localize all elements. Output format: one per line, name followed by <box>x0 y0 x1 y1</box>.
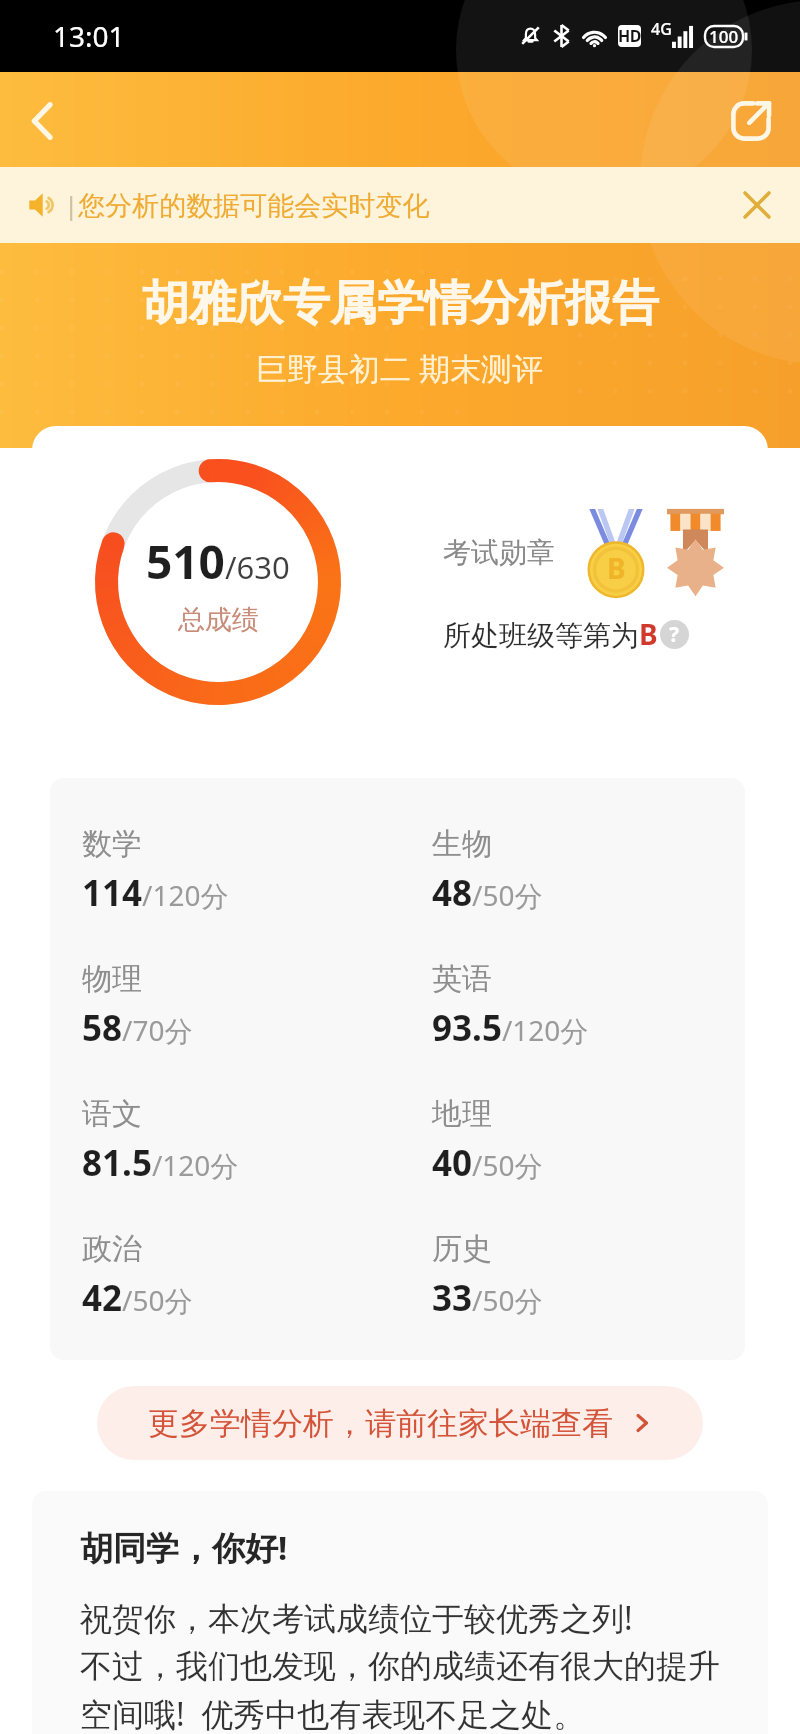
staticText: 数学 <box>82 825 142 863</box>
staticText: 510/630 <box>146 530 290 593</box>
staticText: 58/70分 <box>82 1004 193 1052</box>
staticText: 胡同学，你好! <box>80 1525 288 1570</box>
staticText: 物理 <box>82 960 142 998</box>
staticText: HD <box>618 25 641 47</box>
staticText: 历史 <box>432 1230 492 1268</box>
staticText: 生物 <box>432 825 492 863</box>
staticText: 所处班级等第为B <box>443 615 658 653</box>
button[interactable]: Back <box>16 95 68 147</box>
staticText: 总成绩 <box>178 603 259 637</box>
staticText: 巨野县初二 期末测评 <box>256 347 544 389</box>
staticText: 更多学情分析，请前往家长端查看 <box>148 1404 613 1443</box>
staticText: |您分析的数据可能会实时变化 <box>64 187 430 223</box>
staticText: 40/50分 <box>432 1139 543 1187</box>
staticText: 语文 <box>82 1095 142 1133</box>
button[interactable]: Share <box>724 94 778 148</box>
button[interactable]: Close <box>732 180 782 230</box>
staticText: 42/50分 <box>82 1274 193 1322</box>
staticText: 祝贺你，本次考试成绩位于较优秀之列! 不过，我们也发现，你的成绩还有很大的提升空… <box>80 1596 744 1734</box>
staticText: 地理 <box>432 1095 492 1133</box>
staticText: 48/50分 <box>432 869 543 917</box>
button[interactable]: Help <box>660 620 689 649</box>
staticText: 93.5/120分 <box>432 1004 589 1052</box>
staticText: 81.5/120分 <box>82 1139 239 1187</box>
staticText: 100 <box>709 25 739 48</box>
staticText: 13:01 <box>53 17 125 55</box>
staticText: ? <box>669 620 680 649</box>
staticText: 政治 <box>82 1230 142 1268</box>
button[interactable]: 更多学情分析，请前往家长端查看 <box>97 1386 703 1460</box>
staticText: 4G <box>651 18 672 40</box>
staticText: 考试勋章 <box>443 535 555 570</box>
staticText: 33/50分 <box>432 1274 543 1322</box>
staticText: 胡雅欣专属学情分析报告 <box>142 274 659 333</box>
staticText: B <box>607 549 626 587</box>
staticText: 114/120分 <box>82 869 229 917</box>
staticText: 英语 <box>432 960 492 998</box>
